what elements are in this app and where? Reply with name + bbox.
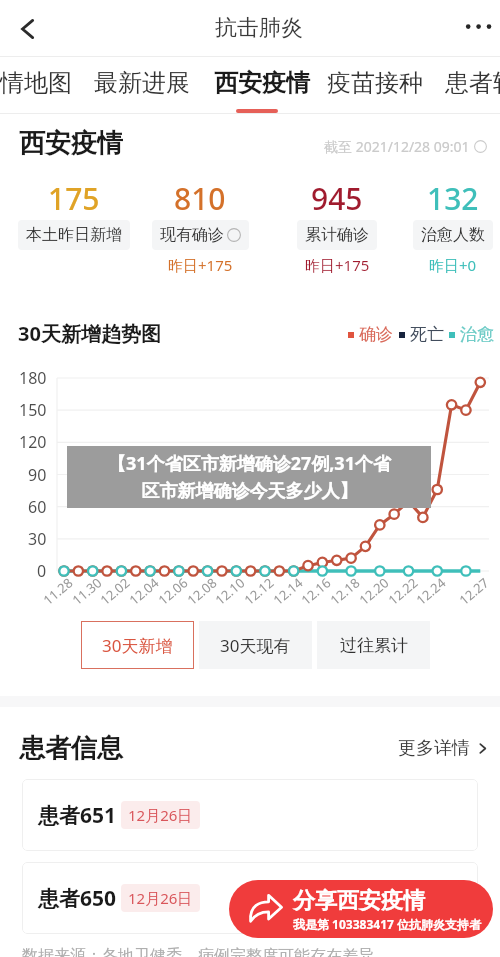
staticText: 0 <box>37 560 47 582</box>
staticText: 西安疫情 <box>19 127 123 160</box>
staticText: 30天新增 <box>102 634 173 657</box>
staticText: 现有确诊 <box>160 225 224 245</box>
staticText: 【31个省区市新增确诊27例,31个省 区市新增确诊今天多少人】 <box>108 451 391 503</box>
staticText: 11.30 <box>68 573 106 609</box>
staticText: 12.12 <box>240 573 278 609</box>
staticText: 12月26日 <box>128 888 193 908</box>
staticText: 30天现有 <box>220 634 291 657</box>
staticText: 12.16 <box>297 573 335 609</box>
staticText: 12.14 <box>269 573 307 609</box>
staticText: 本土昨日新增 <box>26 225 122 245</box>
button[interactable]: More options <box>456 5 500 49</box>
staticText: 12.10 <box>211 573 249 609</box>
staticText: 累计确诊 <box>305 225 369 245</box>
button[interactable]: 西安疫情 <box>214 60 310 106</box>
button[interactable]: Back <box>6 7 50 51</box>
staticText: 我是第 103383417 位抗肺炎支持者 <box>293 916 482 932</box>
staticText: 西安疫情 <box>214 68 310 98</box>
staticText: 30天新增趋势图 <box>18 320 161 347</box>
staticText: 120 <box>19 431 47 453</box>
button[interactable]: 疫情地图 <box>0 60 72 106</box>
staticText: 患者轨迹 <box>445 68 500 98</box>
button[interactable]: 分享西安疫情 <box>229 880 493 938</box>
button[interactable]: 患者轨迹 <box>445 60 500 106</box>
button[interactable]: 过往累计 <box>317 621 430 669</box>
staticText: 患者650 <box>38 884 117 913</box>
button[interactable]: 30天现有 <box>199 621 312 669</box>
staticText: 810 <box>174 178 226 219</box>
staticText: 过往累计 <box>340 635 408 656</box>
staticText: 12.04 <box>125 573 163 609</box>
staticText: 12.06 <box>154 573 192 609</box>
staticText: 12.20 <box>355 573 393 609</box>
staticText: 昨日+0 <box>429 255 477 275</box>
staticText: 945 <box>311 178 363 219</box>
staticText: 11.28 <box>39 573 77 609</box>
staticText: 治愈 <box>460 324 494 345</box>
staticText: 12.18 <box>326 573 364 609</box>
staticText: 患者651 <box>38 801 117 830</box>
staticText: 12.22 <box>384 573 422 609</box>
staticText: 30 <box>28 528 47 550</box>
staticText: 132 <box>427 178 479 219</box>
staticText: 治愈人数 <box>421 225 485 245</box>
staticText: 12.27 <box>455 573 493 609</box>
staticText: 患者信息 <box>19 732 123 765</box>
staticText: 分享西安疫情 <box>293 887 425 915</box>
staticText: 12.24 <box>412 573 450 609</box>
staticText: 死亡 <box>410 324 444 345</box>
staticText: 数据来源：各地卫健委，病例完整度可能存在差异 <box>22 946 374 957</box>
staticText: 180 <box>19 367 47 389</box>
staticText: 确诊 <box>359 324 393 345</box>
staticText: 12.08 <box>183 573 221 609</box>
staticText: 昨日+175 <box>305 255 370 275</box>
staticText: 150 <box>19 399 47 421</box>
staticText: 抗击肺炎 <box>215 14 303 42</box>
button[interactable]: 更多详情 <box>394 733 493 764</box>
staticText: 12.02 <box>96 573 134 609</box>
staticText: 175 <box>48 178 100 219</box>
button[interactable]: 30天新增 <box>81 621 194 669</box>
staticText: 昨日+175 <box>168 255 233 275</box>
staticText: 最新进展 <box>94 68 190 98</box>
staticText: 疫情地图 <box>0 68 72 98</box>
button[interactable]: 患者650 <box>22 862 478 934</box>
staticText: 更多详情 <box>398 737 470 760</box>
staticText: 60 <box>28 496 47 518</box>
button[interactable]: 疫苗接种 <box>327 60 423 106</box>
button[interactable]: 最新进展 <box>94 60 190 106</box>
staticText: 截至 2021/12/28 09:01 <box>324 137 470 156</box>
staticText: 12月26日 <box>128 805 193 825</box>
staticText: 90 <box>28 464 47 486</box>
staticText: 疫苗接种 <box>327 68 423 98</box>
button[interactable]: 患者651 <box>22 779 478 851</box>
